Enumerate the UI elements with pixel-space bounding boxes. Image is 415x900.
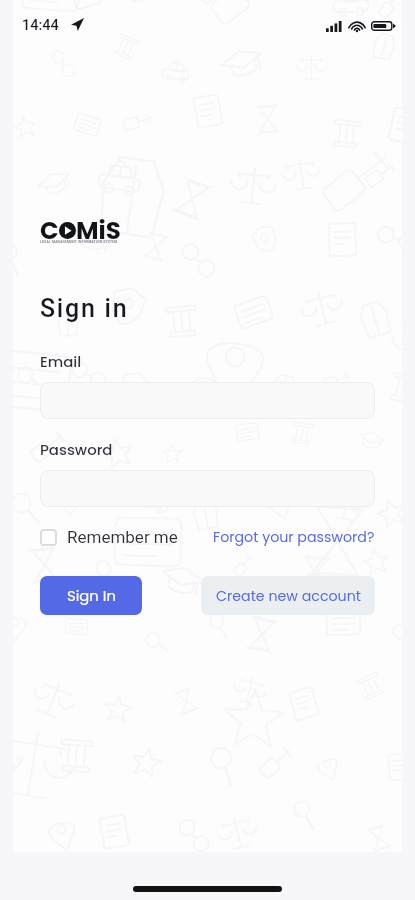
button[interactable]: Create new account bbox=[201, 576, 375, 615]
button[interactable]: Remember me bbox=[40, 527, 178, 547]
button[interactable]: Forgot your password? bbox=[213, 527, 375, 547]
staticText: 14:44 bbox=[22, 17, 59, 34]
staticText: Sign in bbox=[40, 294, 129, 323]
staticText: Sign In bbox=[67, 585, 116, 606]
button[interactable]: Sign In bbox=[40, 576, 142, 615]
staticText: Create new account bbox=[216, 586, 361, 606]
staticText: LEGAL MANAGEMENT INFORMATION SYSTEM bbox=[40, 240, 118, 244]
staticText: C bbox=[40, 213, 59, 247]
staticText: MiS bbox=[76, 213, 121, 247]
staticText: Password bbox=[40, 439, 113, 460]
staticText: Email bbox=[40, 351, 82, 372]
staticText: Remember me bbox=[67, 527, 178, 547]
